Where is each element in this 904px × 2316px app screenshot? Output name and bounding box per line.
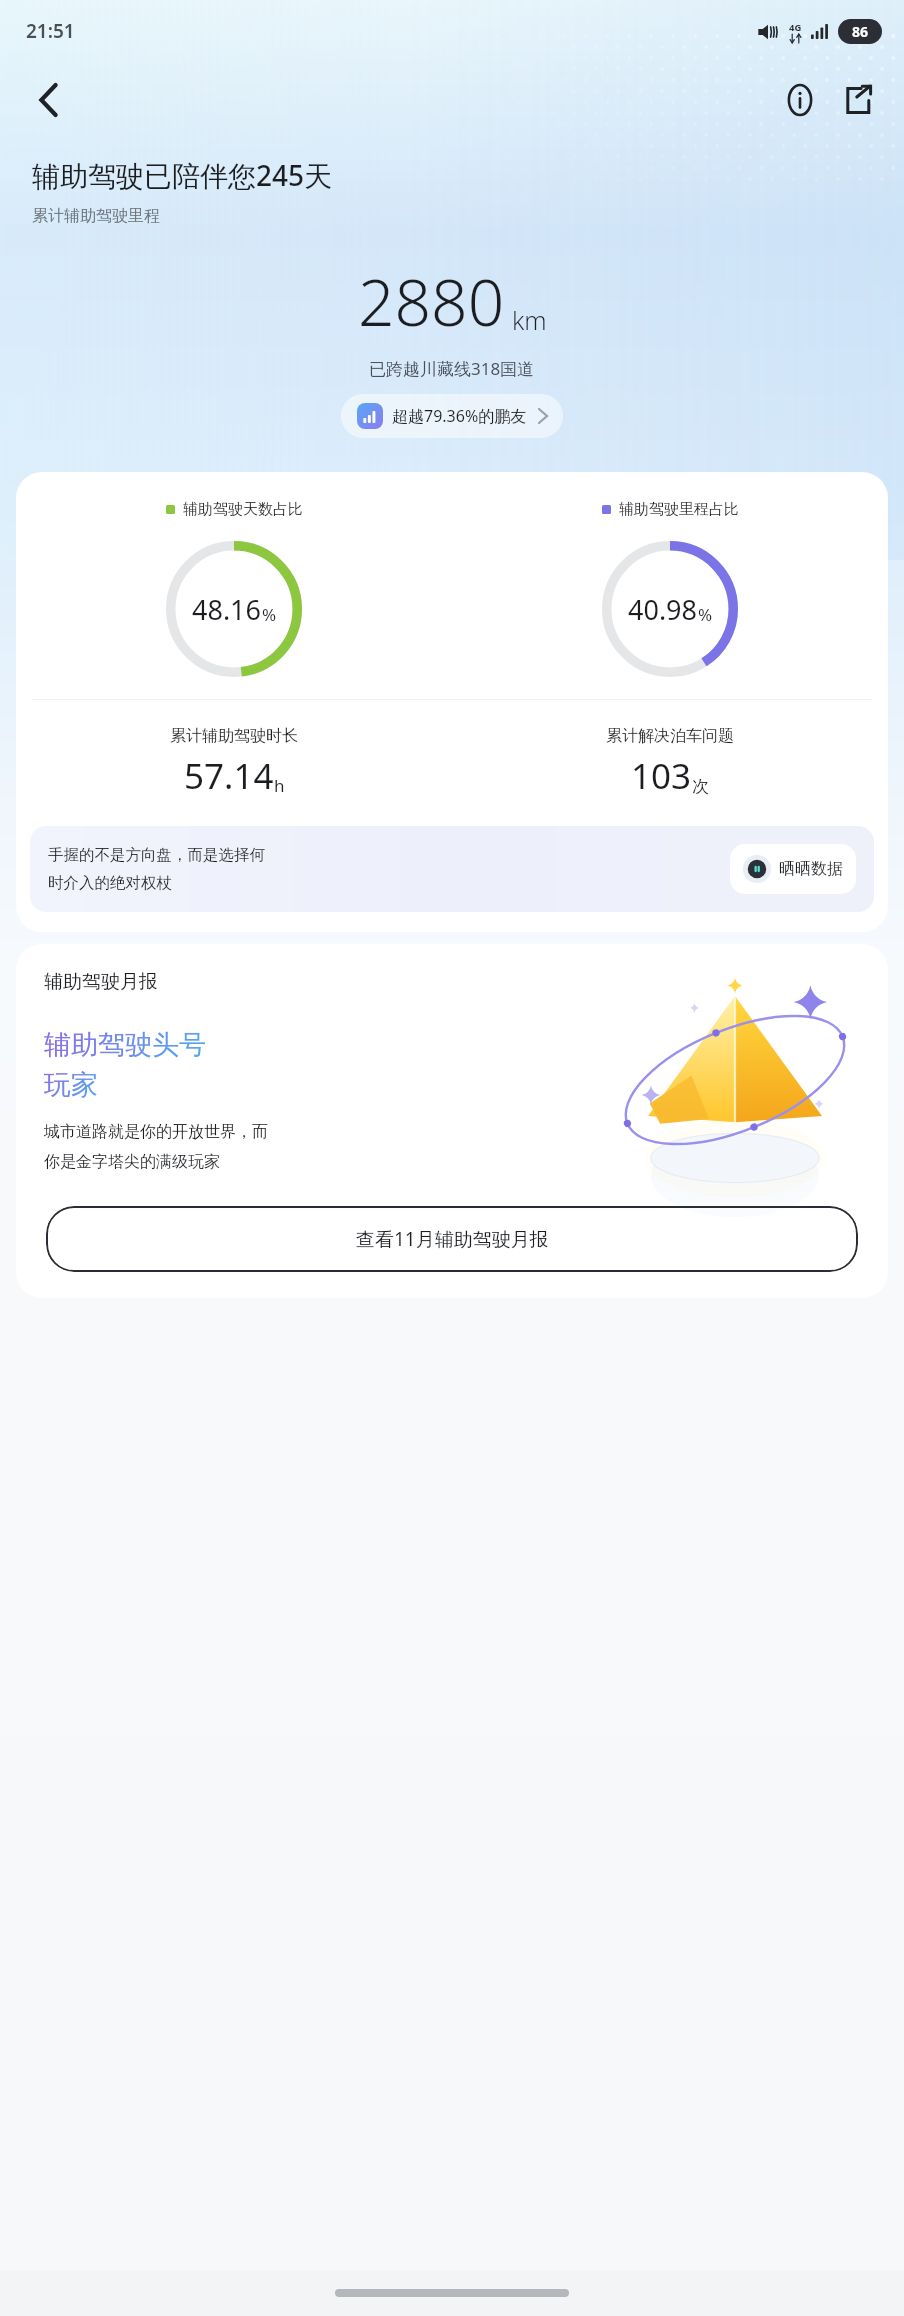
button[interactable]: Info — [774, 74, 826, 126]
staticText: 2880 — [358, 258, 505, 345]
staticText: 你是金字塔尖的满级玩家 — [44, 1152, 220, 1172]
staticText: h — [274, 774, 285, 797]
staticText: 超越79.36%的鹏友 — [392, 405, 527, 427]
button[interactable]: 超越79.36%的鹏友 — [341, 394, 563, 438]
button[interactable]: 晒晒数据 — [730, 844, 856, 894]
staticText: 103 — [631, 752, 692, 800]
staticText: % — [262, 603, 277, 626]
staticText: 57.14 — [184, 752, 274, 800]
staticText: 86 — [852, 22, 869, 41]
staticText: 辅助驾驶月报 — [44, 970, 158, 994]
staticText: km — [512, 303, 547, 337]
button[interactable]: Back — [22, 74, 74, 126]
staticText: 40.98 — [628, 591, 698, 628]
staticText: 21:51 — [26, 18, 75, 44]
staticText: 累计解决泊车问题 — [606, 726, 734, 746]
staticText: 4G — [789, 21, 802, 34]
button[interactable]: Share — [832, 74, 884, 126]
staticText: 已跨越川藏线318国道 — [369, 357, 535, 380]
staticText: 次 — [692, 776, 709, 797]
staticText: 累计辅助驾驶里程 — [32, 206, 160, 226]
staticText: 辅助驾驶天数占比 — [183, 500, 303, 519]
staticText: % — [698, 603, 713, 626]
staticText: 48.16 — [192, 591, 262, 628]
staticText: 辅助驾驶头号 — [44, 1028, 206, 1062]
staticText: 辅助驾驶已陪伴您245天 — [32, 156, 333, 194]
staticText: 时介入的绝对权杖 — [48, 873, 172, 893]
staticText: 晒晒数据 — [779, 859, 843, 879]
staticText: 辅助驾驶里程占比 — [619, 500, 739, 519]
staticText: 累计辅助驾驶时长 — [170, 726, 298, 746]
staticText: 查看11月辅助驾驶月报 — [356, 1226, 549, 1252]
staticText: 城市道路就是你的开放世界，而 — [44, 1122, 268, 1142]
staticText: 玩家 — [44, 1068, 98, 1102]
staticText: 手握的不是方向盘，而是选择何 — [48, 845, 265, 865]
button[interactable]: 查看11月辅助驾驶月报 — [46, 1206, 858, 1272]
